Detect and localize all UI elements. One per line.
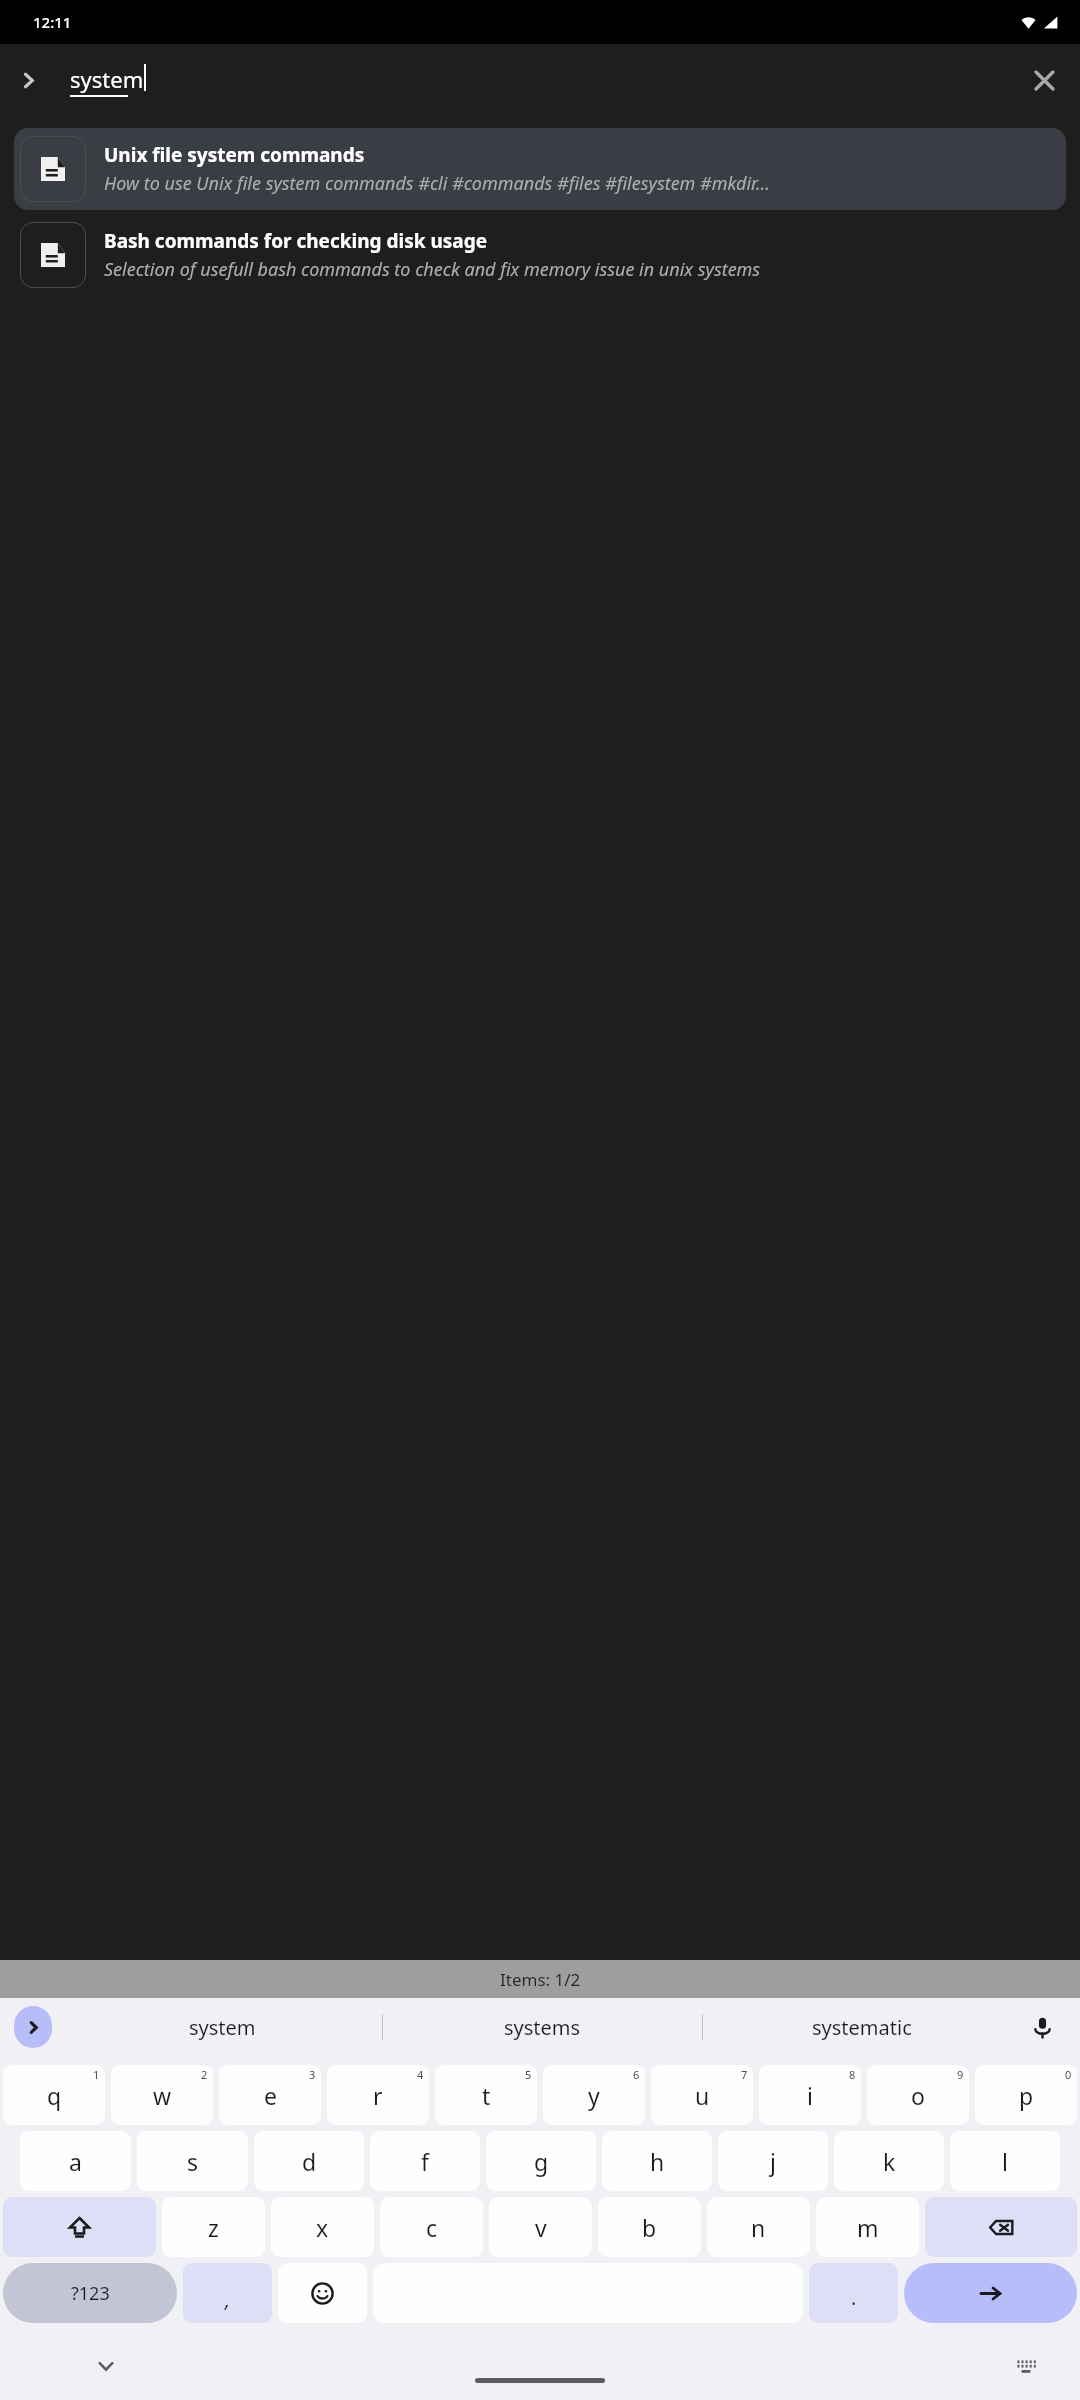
staticText: 9	[957, 2067, 964, 2082]
button[interactable]: Emoji	[278, 2263, 367, 2323]
staticText: m	[857, 2212, 879, 2243]
staticText: 7	[741, 2067, 748, 2082]
button[interactable]: More suggestions	[14, 2006, 52, 2048]
staticText: f	[421, 2146, 429, 2177]
staticText: n	[751, 2212, 766, 2243]
staticText: systems	[504, 2014, 581, 2041]
button[interactable]: o	[867, 2065, 969, 2125]
button[interactable]: y	[543, 2065, 645, 2125]
staticText: systematic	[812, 2014, 912, 2041]
staticText: How to use Unix file system commands #cl…	[104, 171, 770, 196]
button[interactable]: systematic	[702, 1998, 1022, 2056]
button[interactable]: l	[950, 2131, 1060, 2191]
button[interactable]: a	[20, 2131, 131, 2191]
button[interactable]: r	[327, 2065, 429, 2125]
staticText: .	[851, 2284, 857, 2311]
button[interactable]: f	[370, 2131, 480, 2191]
button[interactable]: ?123	[3, 2263, 177, 2323]
button[interactable]: s	[137, 2131, 248, 2191]
staticText: 0	[1065, 2067, 1072, 2082]
button[interactable]: Clear search	[1016, 52, 1072, 108]
button[interactable]: w	[111, 2065, 213, 2125]
button[interactable]: Voice input	[1022, 2007, 1062, 2047]
staticText: d	[302, 2146, 317, 2177]
button[interactable]: v	[489, 2197, 592, 2257]
staticText: system	[70, 64, 144, 94]
button[interactable]: j	[718, 2131, 828, 2191]
staticText: 4	[417, 2067, 424, 2082]
button[interactable]: system	[62, 1998, 382, 2056]
button[interactable]: h	[602, 2131, 712, 2191]
button[interactable]: Hide keyboard	[88, 2348, 124, 2384]
staticText: z	[208, 2212, 219, 2243]
button[interactable]: u	[651, 2065, 753, 2125]
staticText: j	[770, 2146, 776, 2177]
button[interactable]: i	[759, 2065, 861, 2125]
button[interactable]: Expand	[0, 52, 56, 108]
staticText: ?123	[71, 2281, 110, 2306]
button[interactable]: p	[975, 2065, 1077, 2125]
staticText: p	[1019, 2080, 1034, 2111]
staticText: y	[588, 2080, 600, 2111]
staticText: 5	[525, 2067, 532, 2082]
staticText: w	[153, 2080, 172, 2111]
staticText: 1	[93, 2067, 100, 2082]
staticText: Selection of usefull bash commands to ch…	[104, 257, 761, 282]
button[interactable]: t	[435, 2065, 537, 2125]
staticText: g	[534, 2146, 549, 2177]
button[interactable]: d	[254, 2131, 364, 2191]
staticText: 6	[633, 2067, 640, 2082]
button[interactable]: m	[816, 2197, 919, 2257]
staticText: v	[535, 2212, 547, 2243]
button[interactable]: c	[380, 2197, 483, 2257]
button[interactable]: Unix file system commands	[14, 128, 1066, 210]
button[interactable]: Shift	[3, 2197, 156, 2257]
staticText: Items: 1/2	[500, 1968, 581, 1991]
button[interactable]: b	[598, 2197, 701, 2257]
staticText: c	[426, 2212, 438, 2243]
staticText: system	[189, 2014, 256, 2041]
staticText: e	[264, 2080, 277, 2111]
staticText: Unix file system commands	[104, 142, 365, 168]
button[interactable]: Enter	[904, 2263, 1077, 2323]
button[interactable]: g	[486, 2131, 596, 2191]
button[interactable]: ,	[183, 2263, 272, 2323]
staticText: a	[69, 2146, 82, 2177]
button[interactable]: Backspace	[925, 2197, 1077, 2257]
button[interactable]: .	[809, 2263, 898, 2323]
button[interactable]: x	[271, 2197, 374, 2257]
staticText: 12:11	[33, 12, 72, 32]
button[interactable]: z	[162, 2197, 265, 2257]
button[interactable]: n	[707, 2197, 810, 2257]
button[interactable]: q	[3, 2065, 105, 2125]
staticText: Bash commands for checking disk usage	[104, 228, 488, 254]
button[interactable]: systems	[382, 1998, 702, 2056]
staticText: o	[911, 2080, 925, 2111]
button[interactable]: k	[834, 2131, 944, 2191]
staticText: 3	[309, 2067, 316, 2082]
staticText: t	[482, 2080, 491, 2111]
staticText: s	[187, 2146, 199, 2177]
button[interactable]: Switch keyboard	[1008, 2348, 1044, 2384]
button[interactable]: e	[219, 2065, 321, 2125]
staticText: u	[695, 2080, 710, 2111]
staticText: 2	[201, 2067, 208, 2082]
staticText: ,	[225, 2286, 231, 2313]
staticText: k	[883, 2146, 896, 2177]
staticText: 8	[849, 2067, 856, 2082]
staticText: i	[807, 2080, 813, 2111]
button[interactable]: Bash commands for checking disk usage	[14, 214, 1066, 296]
staticText: r	[373, 2080, 383, 2111]
staticText: b	[642, 2212, 657, 2243]
staticText: h	[650, 2146, 665, 2177]
staticText: x	[316, 2212, 329, 2243]
staticText: q	[47, 2080, 62, 2111]
staticText: l	[1002, 2146, 1008, 2177]
